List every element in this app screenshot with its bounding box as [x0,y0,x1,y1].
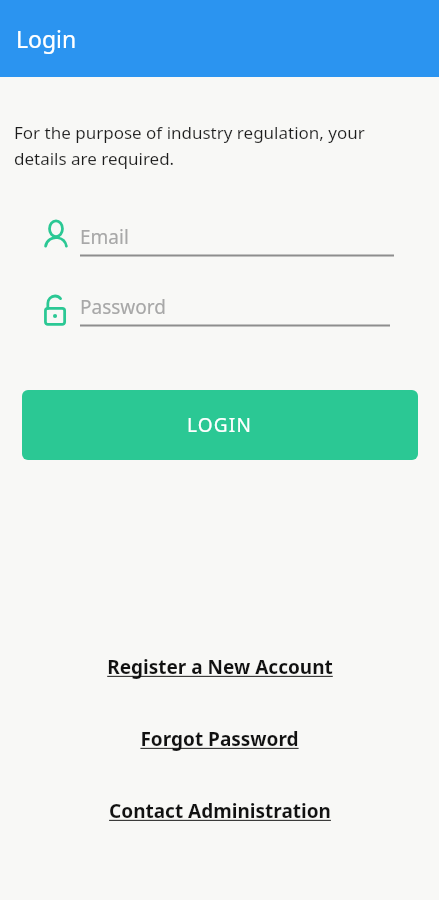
staticText: For the purpose of industry regulation, … [14,121,393,170]
staticText: LOGIN [187,412,253,438]
button[interactable]: Register a New Account [0,654,439,680]
staticText: Contact Administration [109,798,331,824]
staticText: Forgot Password [140,726,299,752]
staticText: Password [80,294,166,320]
staticText: Login [16,23,77,54]
other: Password [44,290,68,330]
button[interactable]: Contact Administration [0,798,439,824]
button[interactable]: Forgot Password [0,726,439,752]
staticText: Email [80,224,129,250]
staticText: Register a New Account [107,654,333,680]
button[interactable]: LOGIN [22,390,418,460]
button[interactable]: Password [44,290,390,330]
other: Email [44,220,68,260]
button[interactable]: Email [44,220,394,260]
